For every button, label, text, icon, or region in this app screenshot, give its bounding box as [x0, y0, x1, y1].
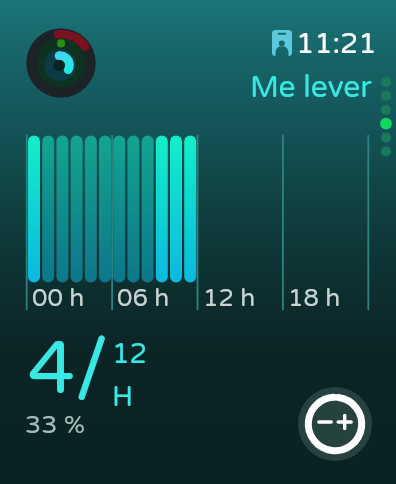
staticText: 00 h	[32, 284, 85, 313]
button[interactable]: Activity rings	[26, 28, 96, 98]
staticText: 18 h	[288, 284, 341, 313]
staticText: 11:21	[296, 26, 377, 61]
staticText: 06 h	[117, 284, 170, 313]
staticText: 33 %	[25, 409, 85, 440]
staticText: 12 h	[203, 284, 256, 313]
button[interactable]: Adjust goal	[298, 387, 372, 461]
staticText: H	[112, 380, 134, 414]
staticText: 4/	[28, 324, 109, 414]
staticText: 12	[112, 337, 148, 371]
button[interactable]: Me lever	[250, 69, 372, 105]
staticText: Me lever	[250, 69, 372, 105]
